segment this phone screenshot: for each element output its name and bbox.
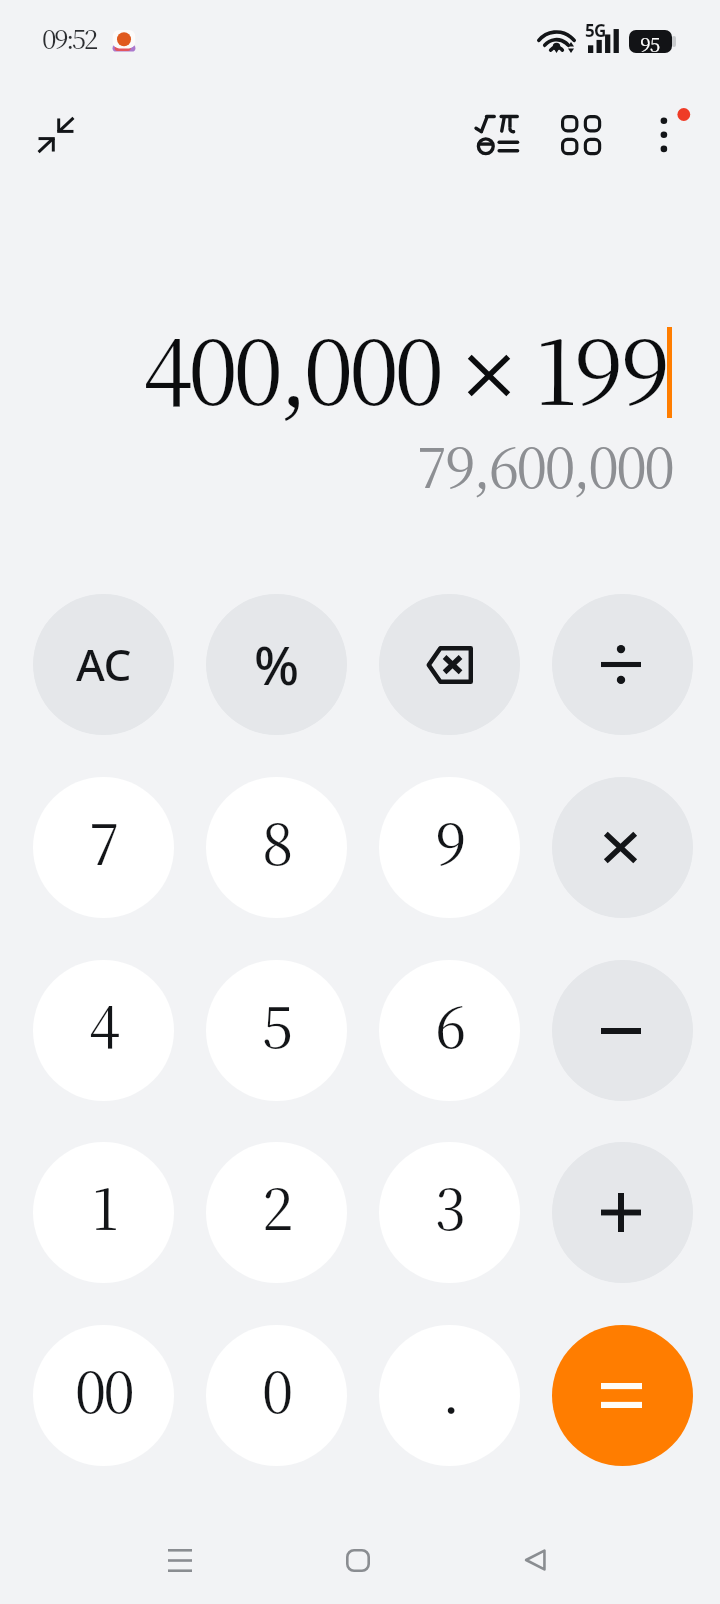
button[interactable]: Divide — [552, 594, 693, 735]
button[interactable]: % — [206, 594, 347, 735]
staticText: 4 — [89, 984, 118, 1064]
staticText: 9 — [435, 801, 464, 881]
staticText: 0 — [262, 1349, 291, 1429]
button[interactable]: More options — [632, 103, 696, 167]
button[interactable]: Recent apps — [150, 1530, 210, 1590]
staticText: 79,600,000 — [417, 425, 673, 504]
button[interactable]: 2 — [206, 1142, 347, 1283]
staticText: 7 — [89, 801, 118, 881]
button[interactable]: Exit full screen — [24, 103, 88, 167]
button[interactable]: 1 — [33, 1142, 174, 1283]
staticText: 95 — [640, 30, 660, 57]
button[interactable]: 0 — [206, 1325, 347, 1466]
button[interactable]: AC — [33, 594, 174, 735]
staticText: 199 — [535, 303, 667, 431]
button[interactable]: Unit converter — [548, 102, 612, 166]
button[interactable]: 6 — [379, 960, 520, 1101]
button[interactable]: 3 — [379, 1142, 520, 1283]
staticText: 400,000 — [143, 303, 440, 431]
button[interactable]: Add — [552, 1142, 693, 1283]
button[interactable]: Multiply — [552, 777, 693, 918]
button[interactable]: 00 — [33, 1325, 174, 1466]
staticText: 8 — [262, 801, 291, 881]
button[interactable]: 4 — [33, 960, 174, 1101]
staticText: 2 — [262, 1166, 291, 1246]
staticText: 1 — [92, 1166, 116, 1246]
button[interactable]: Backspace — [379, 594, 520, 735]
staticText: 09:52 — [42, 19, 96, 56]
button[interactable]: Subtract — [552, 960, 693, 1101]
staticText: 5 — [262, 984, 291, 1064]
staticText: 5G — [585, 19, 606, 42]
button[interactable]: 9 — [379, 777, 520, 918]
staticText: . — [442, 1349, 458, 1429]
button[interactable]: Home — [328, 1530, 388, 1590]
button[interactable]: . — [379, 1325, 520, 1466]
button[interactable]: 5 — [206, 960, 347, 1101]
staticText: AC — [76, 634, 131, 694]
staticText: 6 — [435, 984, 464, 1064]
staticText: 00 — [75, 1349, 133, 1429]
button[interactable]: 7 — [33, 777, 174, 918]
button[interactable]: Back — [505, 1530, 565, 1590]
staticText: % — [254, 628, 300, 700]
button[interactable]: Scientific mode — [465, 104, 529, 168]
button[interactable]: 8 — [206, 777, 347, 918]
staticText: 3 — [435, 1166, 464, 1246]
button[interactable]: Equals — [552, 1325, 693, 1466]
